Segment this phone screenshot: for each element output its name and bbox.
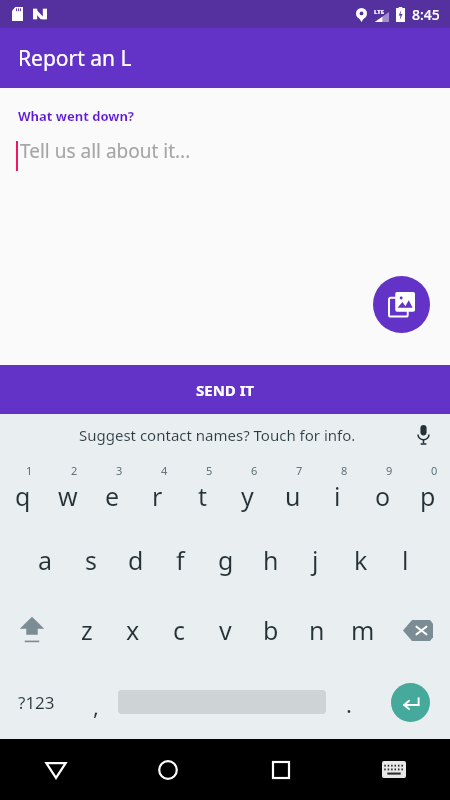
staticText: o [375,479,391,513]
button[interactable]: 8 [315,455,360,525]
staticText: a [38,543,53,577]
staticText: , [93,691,99,721]
button[interactable]: l [383,525,428,595]
button[interactable]: m [340,595,386,665]
button[interactable]: 0 [405,455,450,525]
button[interactable]: Recent apps [224,739,337,800]
button[interactable]: Enter [371,665,450,739]
staticText: 1 [26,463,33,478]
staticText: t [198,479,208,513]
staticText: q [15,479,31,513]
button[interactable]: Shift [0,595,64,665]
button[interactable]: Backspace [386,595,450,665]
button[interactable]: a [22,525,68,595]
staticText: j [312,543,319,577]
button[interactable]: Space [118,665,326,739]
staticText: p [420,479,436,513]
button[interactable]: 3 [90,455,135,525]
staticText: h [263,543,279,577]
staticText: d [128,543,144,577]
button[interactable]: v [202,595,248,665]
staticText: g [218,543,234,577]
staticText: 5 [206,463,213,478]
button[interactable]: 1 [0,455,45,525]
staticText: k [354,543,368,577]
staticText: 2 [71,463,78,478]
button[interactable]: Suggest contact names? Touch for info. [79,425,356,445]
button[interactable]: n [294,595,340,665]
staticText: s [85,543,97,577]
staticText: What went down? [18,107,135,125]
staticText: x [126,613,140,647]
staticText: 8:45 [412,5,440,24]
button[interactable]: c [156,595,202,665]
button[interactable]: 4 [135,455,180,525]
staticText: n [309,613,325,647]
button[interactable]: Hide keyboard [337,739,450,800]
staticText: 9 [386,463,393,478]
button[interactable]: 9 [360,455,405,525]
button[interactable]: SEND IT [0,365,450,414]
button[interactable]: ?123 [0,665,73,739]
staticText: y [241,479,254,513]
button[interactable]: s [68,525,113,595]
staticText: f [176,543,185,577]
staticText: LTE [374,8,385,16]
button[interactable]: x [110,595,156,665]
button[interactable]: Voice input [410,422,436,448]
staticText: 3 [116,463,123,478]
staticText: z [81,613,93,647]
button[interactable]: z [64,595,110,665]
button[interactable]: 2 [45,455,90,525]
button[interactable]: Home [112,739,224,800]
button[interactable]: k [338,525,383,595]
staticText: e [105,479,120,513]
button[interactable]: b [248,595,294,665]
button[interactable]: , [73,665,118,739]
staticText: 4 [161,463,168,478]
button[interactable]: h [248,525,293,595]
button[interactable]: j [293,525,338,595]
button[interactable]: 7 [270,455,315,525]
staticText: 7 [296,463,303,478]
staticText: Tell us all about it... [20,138,191,164]
staticText: ?123 [18,691,55,714]
staticText: 8 [341,463,348,478]
staticText: 6 [251,463,258,478]
staticText: w [58,479,78,513]
button[interactable]: . [326,665,371,739]
staticText: u [285,479,301,513]
staticText: Report an L [18,44,132,73]
button[interactable]: g [203,525,248,595]
staticText: l [402,543,409,577]
button[interactable]: d [113,525,158,595]
button[interactable]: Attach photo [373,276,430,333]
staticText: i [334,479,341,513]
button[interactable]: 5 [180,455,225,525]
staticText: v [219,613,232,647]
button[interactable]: Back [0,739,112,800]
staticText: r [152,479,163,513]
staticText: . [346,689,352,719]
button[interactable]: 6 [225,455,270,525]
button[interactable]: f [158,525,203,595]
staticText: c [173,613,186,647]
staticText: 0 [431,463,438,478]
staticText: m [351,613,375,647]
staticText: b [263,613,279,647]
staticText: SEND IT [196,380,255,400]
